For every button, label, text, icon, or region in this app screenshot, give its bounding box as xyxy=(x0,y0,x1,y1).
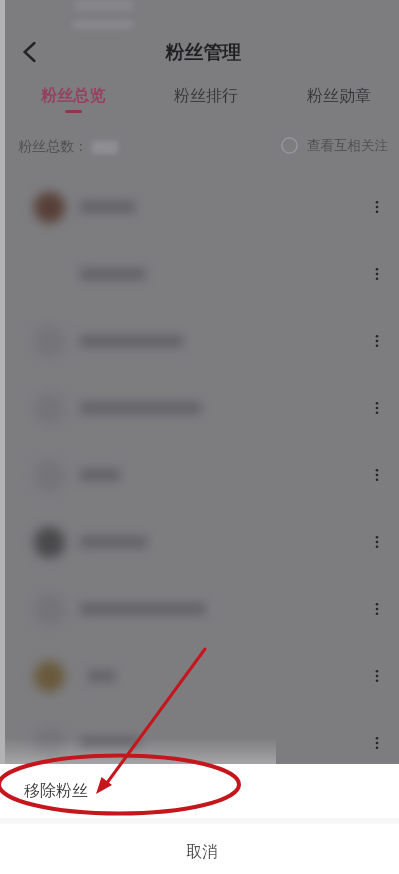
button[interactable]: More options xyxy=(357,388,397,428)
staticText: 查看互相关注 xyxy=(307,137,388,154)
button[interactable]: 查看互相关注 xyxy=(281,137,388,154)
staticText: 取消 xyxy=(186,842,218,862)
button[interactable]: More options xyxy=(0,374,399,441)
button[interactable]: More options xyxy=(0,173,399,240)
button[interactable]: More options xyxy=(0,575,399,642)
button[interactable]: More options xyxy=(357,321,397,361)
button[interactable]: More options xyxy=(357,187,397,227)
staticText: 粉丝管理 xyxy=(165,41,241,65)
button[interactable]: More options xyxy=(0,642,399,709)
button[interactable]: More options xyxy=(357,656,397,696)
button[interactable]: More options xyxy=(357,522,397,562)
button[interactable]: More options xyxy=(0,508,399,575)
button[interactable]: More options xyxy=(0,307,399,374)
staticText: 移除粉丝 xyxy=(24,781,88,801)
button[interactable]: More options xyxy=(357,455,397,495)
button[interactable]: More options xyxy=(0,441,399,508)
button[interactable]: 移除粉丝 xyxy=(0,764,399,818)
staticText: 粉丝勋章 xyxy=(307,86,371,106)
button[interactable]: More options xyxy=(357,254,397,294)
button[interactable]: More options xyxy=(0,776,399,843)
button[interactable]: More options xyxy=(0,240,399,307)
button[interactable]: 粉丝总览 xyxy=(6,86,139,113)
button[interactable]: 粉丝排行 xyxy=(139,86,272,113)
button[interactable]: More options xyxy=(0,709,399,776)
button[interactable]: More options xyxy=(357,723,397,763)
button[interactable]: 粉丝勋章 xyxy=(272,86,399,113)
button[interactable]: Back xyxy=(8,30,52,74)
staticText: 粉丝排行 xyxy=(174,86,238,106)
button[interactable]: More options xyxy=(357,589,397,629)
button[interactable]: 取消 xyxy=(0,824,399,874)
staticText: 粉丝总数： xyxy=(18,138,88,156)
staticText: 粉丝总览 xyxy=(41,86,105,106)
